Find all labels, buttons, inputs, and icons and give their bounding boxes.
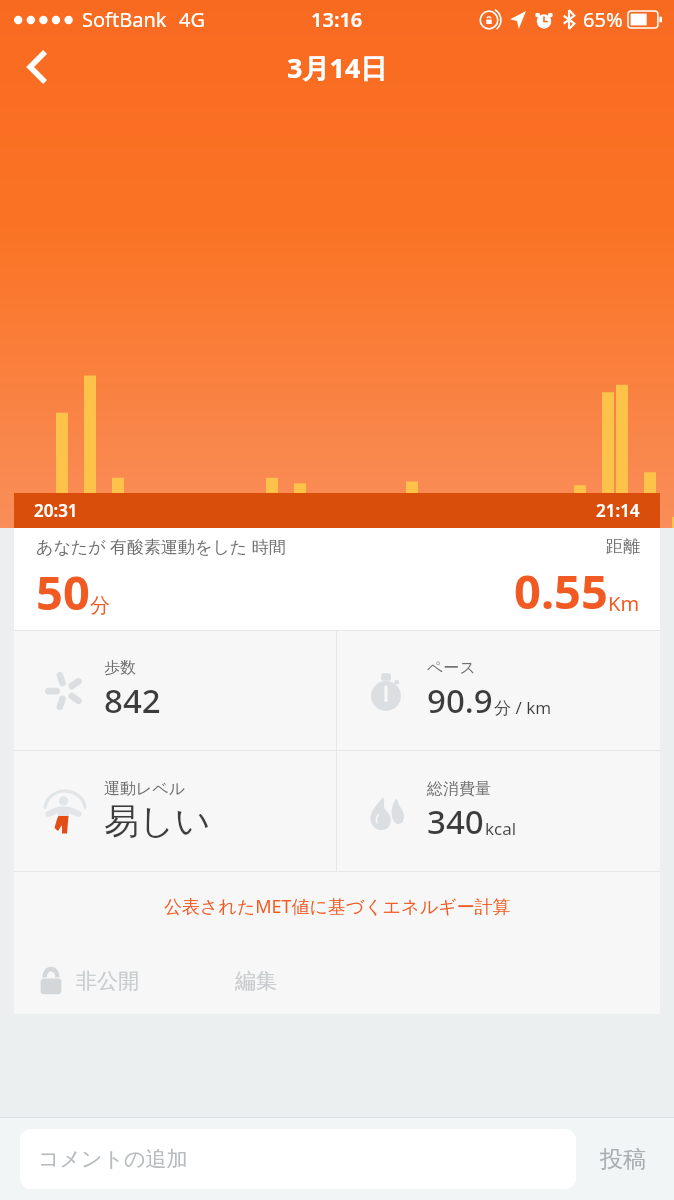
staticText: 90.9 xyxy=(427,678,493,723)
button[interactable]: 公表されたMET値に基づくエネルギー計算 xyxy=(152,882,523,931)
button[interactable]: 投稿 xyxy=(594,1135,652,1184)
staticText: コメントの追加 xyxy=(38,1146,188,1172)
staticText: SoftBank xyxy=(82,6,167,33)
staticText: 分 / km xyxy=(494,696,552,719)
staticText: 距離 xyxy=(606,536,640,557)
staticText: 842 xyxy=(104,678,161,723)
button[interactable]: Calories xyxy=(337,751,660,871)
staticText: 50 xyxy=(36,560,90,624)
staticText: 歩数 xyxy=(104,658,136,678)
staticText: ペース xyxy=(427,658,476,678)
staticText: 易しい xyxy=(104,799,211,843)
button[interactable]: コメントの追加 xyxy=(20,1129,576,1189)
staticText: 編集 xyxy=(235,968,277,994)
staticText: Km xyxy=(608,590,640,617)
staticText: 分 xyxy=(90,593,110,618)
staticText: 総消費量 xyxy=(427,779,491,799)
staticText: 340 xyxy=(427,799,484,844)
staticText: 65% xyxy=(583,6,623,33)
staticText: 13:16 xyxy=(311,6,363,33)
button[interactable]: 非公開 xyxy=(38,966,139,996)
staticText: 21:14 xyxy=(596,499,640,522)
staticText: 公表されたMET値に基づくエネルギー計算 xyxy=(164,894,511,919)
staticText: 0.55 xyxy=(514,559,608,623)
staticText: 運動レベル xyxy=(104,779,186,799)
staticText: 非公開 xyxy=(76,968,139,994)
button[interactable]: Workout level xyxy=(14,751,336,871)
staticText: 20:31 xyxy=(34,499,78,522)
button[interactable]: Back xyxy=(10,39,66,95)
staticText: 投稿 xyxy=(600,1145,646,1174)
button[interactable]: Pace xyxy=(337,631,660,750)
button[interactable]: 編集 xyxy=(235,968,277,994)
staticText: あなたが 有酸素運動をした 時間 xyxy=(36,535,286,558)
staticText: 3月14日 xyxy=(287,49,388,86)
staticText: 4G xyxy=(179,6,205,33)
staticText: kcal xyxy=(485,817,517,840)
button[interactable]: Steps xyxy=(14,631,336,750)
